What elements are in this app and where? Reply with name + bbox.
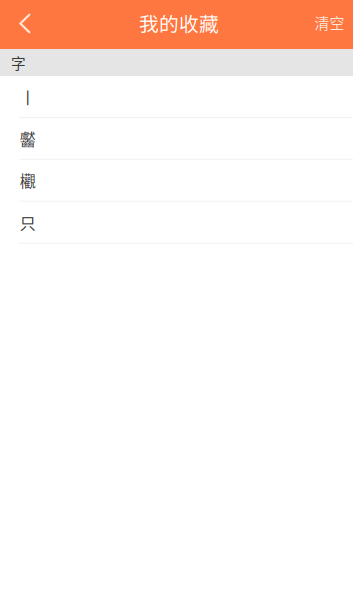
button[interactable]: 丨 [0,76,353,118]
button[interactable]: 清空 [299,0,353,49]
staticText: 字 [11,52,26,73]
staticText: 齾 [20,127,36,150]
staticText: 清空 [314,12,344,33]
button[interactable]: 只 [0,202,353,244]
staticText: 我的收藏 [139,9,219,37]
staticText: 欟 [20,169,36,192]
button[interactable]: 欟 [0,160,353,202]
button[interactable]: 齾 [0,118,353,160]
staticText: 丨 [20,85,36,108]
staticText: 只 [20,211,36,234]
button[interactable]: Back [0,0,43,49]
